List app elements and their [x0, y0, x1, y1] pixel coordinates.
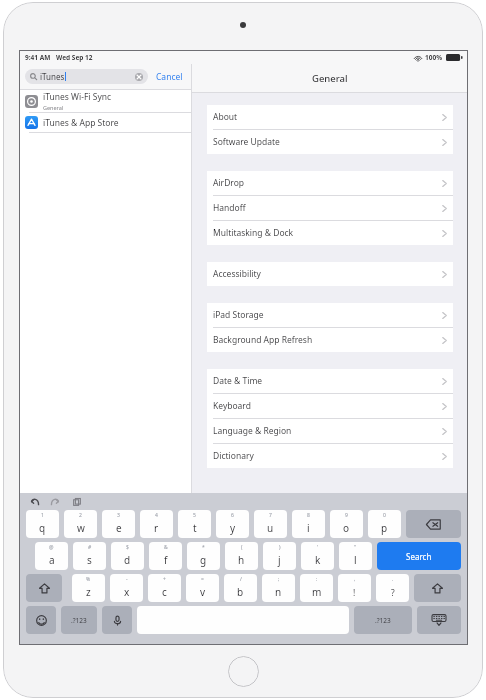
button[interactable]: + [148, 574, 181, 602]
staticText: iPad Storage [213, 309, 264, 321]
staticText: 6 [231, 512, 234, 519]
staticText: 3 [117, 512, 120, 519]
button[interactable]: Date & Time [207, 369, 453, 393]
button[interactable]: Numbers [61, 606, 97, 634]
staticText: $ [126, 544, 129, 551]
staticText: g [200, 553, 207, 567]
button[interactable]: Dictation [102, 606, 132, 634]
button[interactable]: Background App Refresh [207, 328, 453, 352]
staticText: ) [279, 544, 281, 551]
button[interactable]: Software Update [207, 130, 453, 154]
button[interactable]: 9 [330, 510, 363, 538]
button[interactable]: 5 [178, 510, 211, 538]
button[interactable]: 3 [102, 510, 135, 538]
button[interactable]: / [224, 574, 257, 602]
button[interactable]: * [187, 542, 220, 570]
button[interactable]: ' [301, 542, 334, 570]
button[interactable]: iTunes Wi-Fi Sync [19, 90, 191, 112]
staticText: . [392, 576, 394, 583]
button[interactable]: Hide keyboard [417, 606, 461, 634]
button[interactable]: Keyboard [207, 394, 453, 418]
button[interactable]: Multitasking & Dock [207, 221, 453, 245]
staticText: Keyboard [213, 400, 251, 412]
staticText: 5 [193, 512, 196, 519]
button[interactable]: Shift [26, 574, 62, 602]
staticText: Date & Time [213, 375, 263, 387]
staticText: r [154, 521, 159, 535]
staticText: z [86, 585, 91, 599]
staticText: Background App Refresh [213, 334, 313, 346]
button[interactable]: - [110, 574, 143, 602]
staticText: iTunes Wi-Fi Sync [43, 91, 112, 103]
staticText: e [116, 521, 122, 535]
button[interactable]: 8 [292, 510, 325, 538]
button[interactable]: iTunes & App Store [19, 113, 191, 132]
staticText: j [278, 553, 281, 567]
button[interactable]: : [300, 574, 333, 602]
button[interactable]: ( [225, 542, 258, 570]
button[interactable]: Accessibility [207, 262, 453, 286]
button[interactable]: = [186, 574, 219, 602]
staticText: h [238, 553, 245, 567]
staticText: @ [49, 544, 54, 551]
staticText: Cancel [156, 71, 183, 83]
button[interactable]: 6 [216, 510, 249, 538]
button[interactable]: Delete [406, 510, 461, 538]
button[interactable]: Emoji [26, 606, 56, 634]
button[interactable]: % [72, 574, 105, 602]
button[interactable]: Redo [49, 495, 62, 508]
button[interactable]: Handoff [207, 196, 453, 220]
button[interactable]: Cancel [154, 68, 185, 86]
button[interactable]: Dictionary [207, 444, 453, 468]
staticText: l [354, 553, 357, 567]
staticText: iTunes [40, 71, 65, 82]
staticText: .?123 [375, 616, 391, 625]
button[interactable]: iPad Storage [207, 303, 453, 327]
button[interactable]: Paste [70, 495, 83, 508]
staticText: 1 [41, 512, 44, 519]
button[interactable]: 0 [368, 510, 401, 538]
button[interactable]: " [339, 542, 372, 570]
button[interactable]: & [149, 542, 182, 570]
staticText: 0 [383, 512, 386, 519]
button[interactable]: 2 [64, 510, 97, 538]
staticText: 8 [307, 512, 310, 519]
button[interactable]: Numbers [354, 606, 412, 634]
staticText: Search [406, 551, 432, 562]
button[interactable]: 7 [254, 510, 287, 538]
staticText: p [381, 521, 388, 535]
button[interactable]: . [376, 574, 409, 602]
button[interactable]: Language & Region [207, 419, 453, 443]
staticText: About [213, 111, 238, 123]
staticText: 7 [269, 512, 272, 519]
button[interactable]: iTunes [25, 69, 148, 84]
button[interactable]: AirDrop [207, 171, 453, 195]
button[interactable]: # [73, 542, 106, 570]
staticText: Dictionary [213, 450, 254, 462]
button[interactable]: About [207, 105, 453, 129]
staticText: t [193, 521, 197, 535]
button[interactable]: Search [377, 542, 461, 570]
button[interactable]: ; [262, 574, 295, 602]
button[interactable]: @ [35, 542, 68, 570]
staticText: ( [241, 544, 243, 551]
staticText: a [49, 553, 55, 567]
staticText: : [316, 576, 318, 583]
button[interactable]: , [338, 574, 371, 602]
button[interactable]: Shift [414, 574, 461, 602]
button[interactable]: 1 [26, 510, 59, 538]
staticText: = [201, 576, 204, 583]
button[interactable]: Home [228, 656, 259, 687]
button[interactable]: $ [111, 542, 144, 570]
staticText: .?123 [71, 616, 87, 625]
button[interactable]: ) [263, 542, 296, 570]
button[interactable]: 4 [140, 510, 173, 538]
staticText: % [86, 576, 91, 583]
staticText: b [237, 585, 244, 599]
staticText: ! [353, 587, 356, 599]
staticText: Wed Sep 12 [56, 53, 93, 62]
staticText: Software Update [213, 136, 280, 148]
button[interactable]: Clear text [135, 73, 143, 81]
button[interactable]: Undo [28, 495, 41, 508]
